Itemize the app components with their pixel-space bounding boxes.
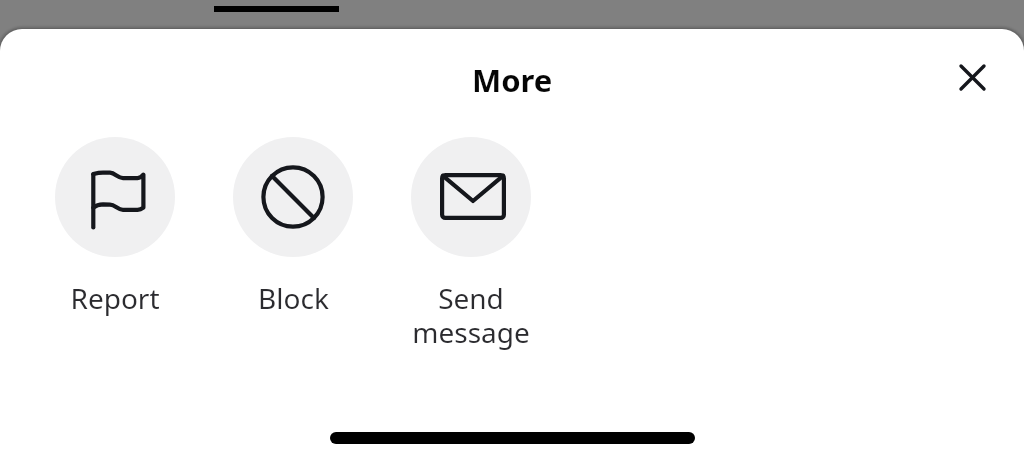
staticText: Send message [412, 279, 530, 352]
staticText: More [472, 59, 553, 101]
button[interactable]: Report [55, 137, 175, 317]
staticText: Report [70, 279, 160, 317]
button[interactable]: Send message [411, 137, 531, 352]
button[interactable]: Block [233, 137, 353, 317]
button[interactable]: Close [946, 51, 998, 103]
staticText: Block [258, 279, 329, 317]
